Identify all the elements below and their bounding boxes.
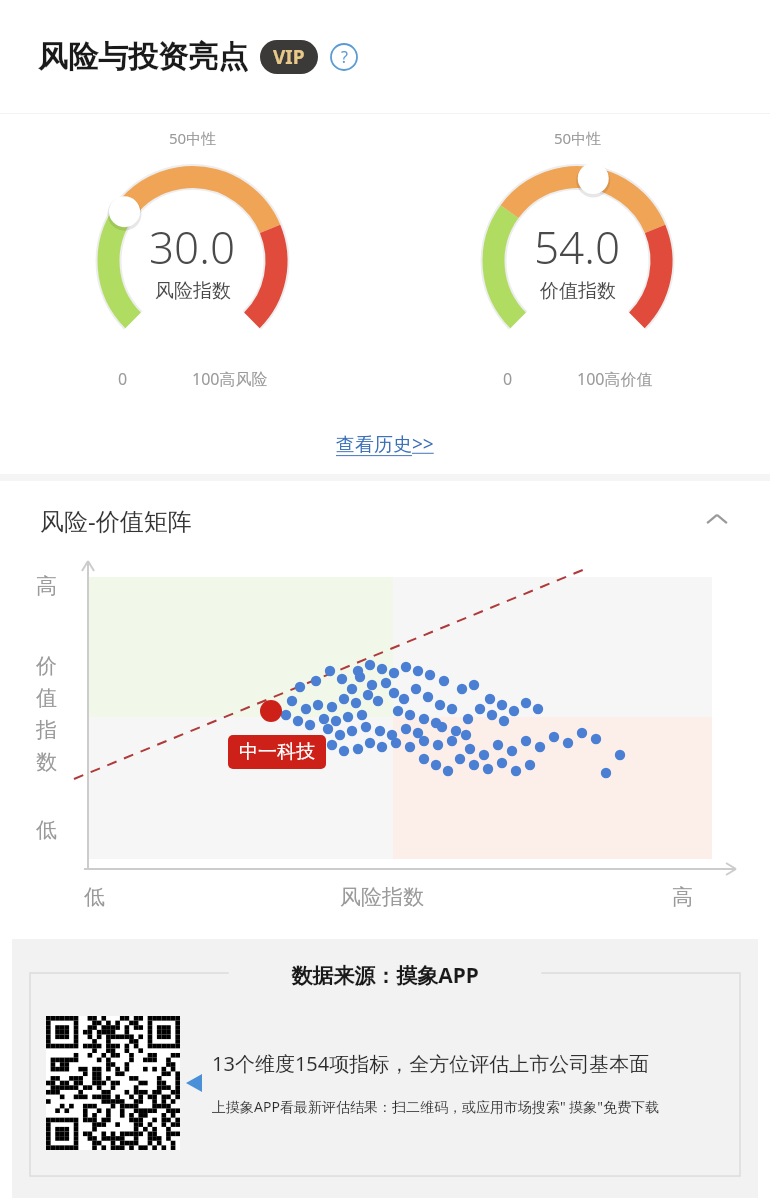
staticText: 数据来源：摸象APP <box>291 961 479 990</box>
staticText: 0 <box>503 368 513 390</box>
staticText: 100高价值 <box>577 368 653 390</box>
staticText: 数 <box>36 749 57 775</box>
staticText: 上摸象APP看最新评估结果：扫二维码，或应用市场搜索" 摸象"免费下载 <box>212 1097 659 1116</box>
staticText: 值 <box>36 685 57 711</box>
staticText: 低 <box>36 817 57 843</box>
button[interactable]: Help <box>330 43 358 71</box>
staticText: 0 <box>118 368 128 390</box>
staticText: 查看历史>> <box>336 431 434 457</box>
staticText: 13个维度154项指标，全方位评估上市公司基本面 <box>212 1050 650 1077</box>
button[interactable]: 风险-价值矩阵 <box>0 481 770 559</box>
staticText: ? <box>341 46 348 68</box>
button[interactable]: 查看历史>> <box>328 425 442 463</box>
button[interactable]: 中一科技 <box>228 735 326 769</box>
staticText: 50中性 <box>169 128 217 148</box>
staticText: 价 <box>36 653 57 679</box>
staticText: VIP <box>273 44 305 70</box>
staticText: 风险指数 <box>155 279 231 303</box>
staticText: 30.0 <box>149 217 236 277</box>
staticText: 风险-价值矩阵 <box>40 504 192 537</box>
staticText: 指 <box>36 717 57 743</box>
staticText: 风险与投资亮点 <box>38 38 248 76</box>
staticText: 100高风险 <box>192 368 268 390</box>
staticText: 低 <box>84 884 105 910</box>
button[interactable]: VIP <box>260 40 318 74</box>
other: Collapse <box>704 507 730 533</box>
staticText: 50中性 <box>554 128 602 148</box>
staticText: 风险指数 <box>340 884 424 910</box>
staticText: 高 <box>672 884 693 910</box>
staticText: 价值指数 <box>540 279 616 303</box>
staticText: 54.0 <box>534 217 621 277</box>
staticText: 中一科技 <box>239 740 315 764</box>
staticText: 高 <box>36 573 57 599</box>
